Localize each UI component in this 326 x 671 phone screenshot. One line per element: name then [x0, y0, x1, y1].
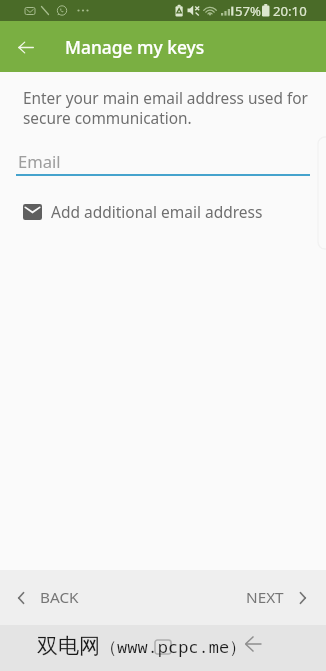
staticText: 57%	[235, 2, 262, 20]
staticText: BACK	[40, 587, 79, 608]
staticText: 20:10	[273, 2, 307, 20]
button[interactable]: Email	[16, 147, 310, 176]
button[interactable]: NEXT	[226, 574, 326, 621]
button[interactable]: BACK	[0, 574, 99, 621]
button[interactable]: Add additional email address	[0, 201, 326, 222]
staticText: Email	[18, 150, 61, 173]
staticText: 双电网	[37, 633, 100, 659]
staticText: NEXT	[246, 587, 284, 608]
button[interactable]: Back	[9, 30, 43, 64]
staticText: Manage my keys	[65, 35, 205, 59]
button[interactable]: Back	[241, 632, 265, 656]
staticText: （www.pcpc.me）	[100, 635, 247, 658]
button[interactable]: Recent apps	[149, 634, 177, 662]
staticText: Add additional email address	[51, 201, 263, 222]
staticText: Enter your main email address used for s…	[23, 88, 308, 128]
